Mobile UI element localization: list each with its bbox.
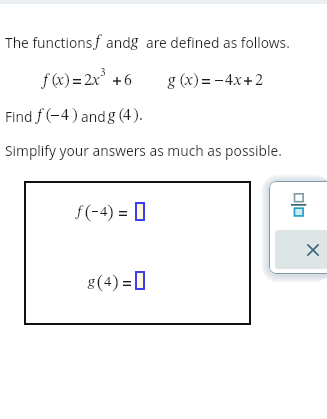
staticText: 2 [84,73,92,89]
staticText: Simplify your answers as much as possibl… [5,141,282,160]
staticText: ) [64,73,70,89]
staticText: x [185,73,193,89]
staticText: f [37,108,42,124]
staticText: ( [46,108,52,124]
button[interactable]: Answer input [135,271,145,290]
button[interactable]: Close [275,230,327,269]
staticText: ( [119,108,125,124]
staticText: ) [193,73,199,89]
staticText: and [106,33,131,52]
staticText: g [88,275,95,290]
staticText: Find [5,107,33,126]
staticText: ( [85,204,92,223]
staticText: ) [107,204,114,223]
staticText: x [92,73,100,89]
staticText: 4 [225,73,233,89]
staticText: f [95,34,100,50]
button[interactable]: Answer input [135,202,145,221]
staticText: f [43,73,48,89]
staticText: ( [52,73,58,89]
staticText: 6 [124,73,132,89]
staticText: 4 [100,205,108,220]
staticText: x [56,73,64,89]
staticText: . [139,108,143,124]
staticText: ) [72,108,78,124]
staticText: are defined as follows. [146,33,290,52]
staticText: x [234,73,242,89]
staticText: 4 [104,275,112,290]
staticText: ( [180,73,186,89]
staticText: ( [97,274,104,293]
staticText: g [131,34,139,50]
staticText: 3 [100,67,106,79]
staticText: g [108,108,116,124]
button[interactable]: Fraction [269,181,327,230]
staticText: The functions [5,33,93,52]
staticText: and [81,107,106,126]
staticText: ) [112,274,119,293]
staticText: g [168,73,176,89]
staticText: 2 [255,73,263,89]
staticText: ) [133,108,139,124]
staticText: 4 [61,108,69,124]
staticText: 4 [123,108,131,124]
staticText: f [77,205,82,220]
